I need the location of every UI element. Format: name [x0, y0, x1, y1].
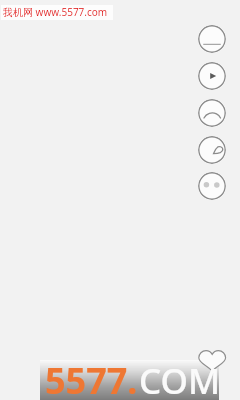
- staticText: 5577.: [45, 356, 138, 400]
- button[interactable]: More options: [198, 172, 226, 200]
- button[interactable]: Collapse: [198, 25, 226, 53]
- button[interactable]: Curve: [198, 99, 226, 127]
- button[interactable]: Leaf: [198, 136, 226, 164]
- staticText: COM: [139, 357, 221, 400]
- staticText: 我机网 www.5577.com: [3, 5, 108, 19]
- button[interactable]: Play: [198, 62, 226, 90]
